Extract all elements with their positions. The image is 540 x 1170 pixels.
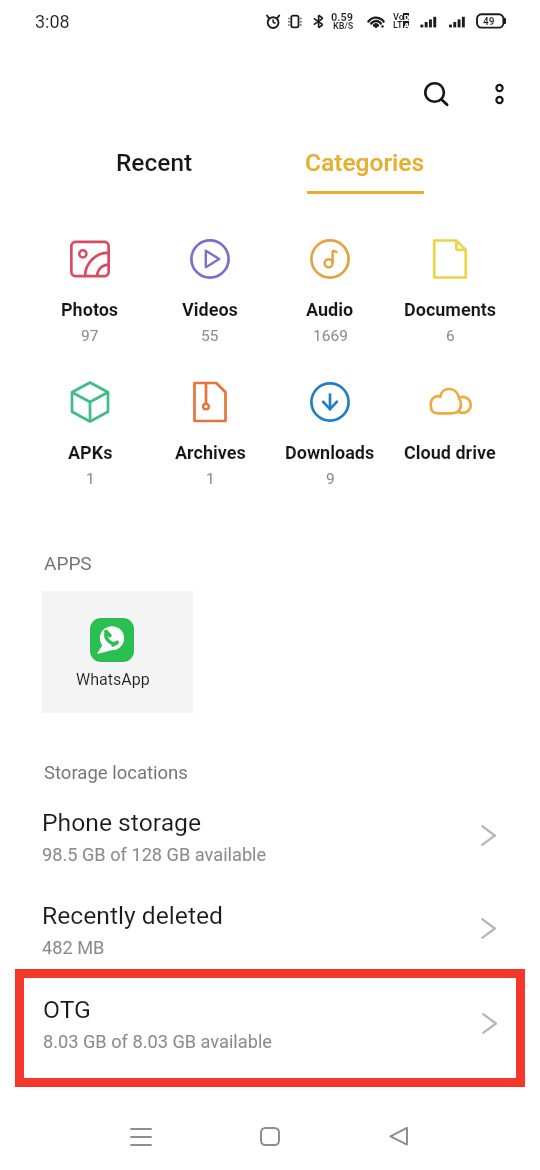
staticText: 1: [86, 470, 95, 488]
staticText: Audio: [306, 299, 354, 320]
button[interactable]: Recently deleted: [0, 886, 540, 971]
staticText: 98.5 GB of 128 GB available: [42, 844, 267, 865]
staticText: 1: [206, 470, 215, 488]
staticText: APPS: [44, 552, 92, 574]
staticText: Storage locations: [44, 762, 188, 784]
staticText: WhatsApp: [76, 670, 150, 689]
button[interactable]: APKs: [30, 380, 150, 488]
staticText: 0.59: [331, 11, 354, 24]
staticText: 9: [326, 470, 335, 488]
staticText: 6: [446, 327, 455, 345]
button[interactable]: Downloads: [270, 380, 390, 488]
button[interactable]: Videos: [150, 237, 270, 345]
button[interactable]: Back: [375, 1112, 423, 1160]
staticText: APKs: [68, 442, 113, 463]
staticText: Videos: [182, 299, 238, 320]
staticText: 49: [483, 16, 495, 28]
staticText: Downloads: [285, 442, 375, 463]
button[interactable]: Home: [246, 1112, 294, 1160]
button[interactable]: Documents: [390, 237, 510, 345]
button[interactable]: Categories: [285, 148, 445, 208]
staticText: 3:08: [35, 11, 70, 32]
staticText: Phone storage: [42, 808, 202, 837]
staticText: 55: [201, 327, 219, 345]
staticText: OTG: [43, 995, 91, 1024]
staticText: Recent: [116, 148, 193, 177]
button[interactable]: Photos: [30, 237, 150, 345]
staticText: LTE: [393, 20, 408, 31]
staticText: 482 MB: [42, 937, 105, 958]
staticText: 1669: [313, 327, 348, 345]
staticText: Categories: [305, 148, 425, 177]
button[interactable]: Phone storage: [0, 793, 540, 878]
button[interactable]: Archives: [150, 380, 270, 488]
staticText: Photos: [61, 299, 119, 320]
button[interactable]: Search: [411, 69, 458, 116]
button[interactable]: Audio: [270, 237, 390, 345]
staticText: Documents: [404, 299, 497, 320]
button[interactable]: Cloud drive: [390, 380, 510, 463]
staticText: Cloud drive: [404, 442, 496, 463]
staticText: A: [404, 21, 410, 28]
staticText: 8.03 GB of 8.03 GB available: [43, 1031, 272, 1052]
button[interactable]: Recent apps: [117, 1112, 165, 1160]
staticText: Recently deleted: [42, 901, 224, 930]
staticText: Archives: [175, 442, 246, 463]
staticText: VoL: [393, 12, 409, 23]
staticText: 97: [81, 327, 99, 345]
button[interactable]: OTG: [24, 978, 516, 1078]
staticText: KB/S: [333, 21, 354, 32]
button[interactable]: Recent: [59, 140, 250, 184]
staticText: D: [404, 13, 410, 20]
button[interactable]: More options: [476, 70, 523, 117]
button[interactable]: WhatsApp: [42, 591, 193, 713]
